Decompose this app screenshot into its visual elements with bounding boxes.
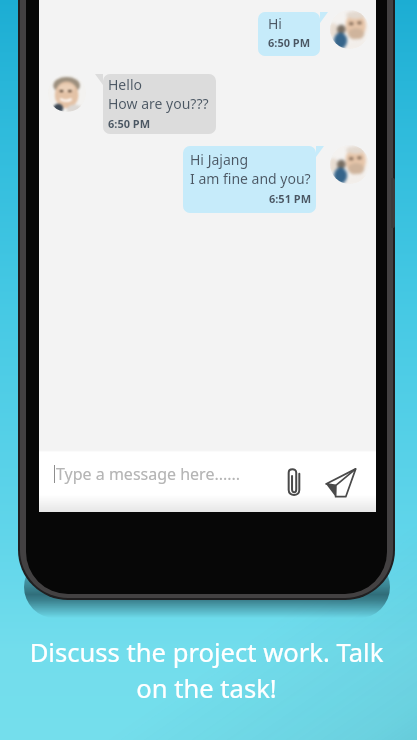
button[interactable]: Hi Jajang: [183, 146, 316, 213]
staticText: Discuss the project work. Talk on the ta…: [0, 635, 415, 705]
staticText: Hi Jajang: [190, 150, 249, 169]
staticText: 6:50 PM: [268, 35, 311, 50]
staticText: I am fine and you?: [190, 169, 311, 188]
button[interactable]: Send message: [324, 465, 358, 499]
button[interactable]: Hello: [103, 74, 216, 134]
staticText: Hi: [268, 14, 282, 33]
staticText: Hello: [108, 75, 142, 94]
staticText: How are you???: [108, 94, 209, 113]
staticText: 6:50 PM: [108, 116, 151, 131]
button[interactable]: Hi: [258, 12, 320, 56]
staticText: 6:51 PM: [190, 191, 311, 206]
staticText: Type a message here......: [56, 463, 241, 485]
button[interactable]: Attach file: [277, 465, 311, 499]
